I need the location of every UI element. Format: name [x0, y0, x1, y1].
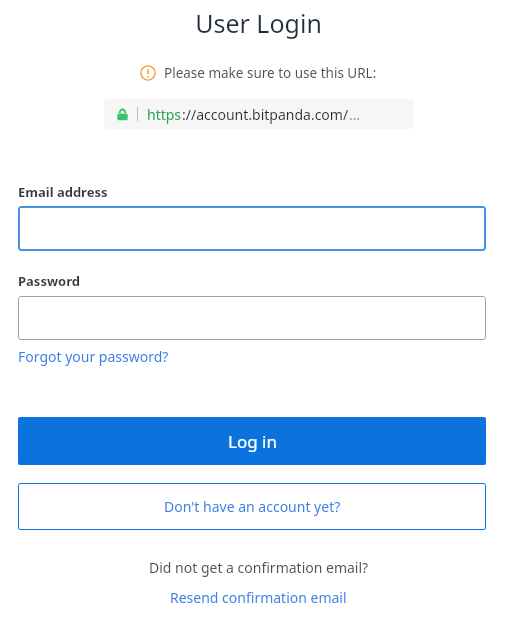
staticText: ://account.bitpanda.com/	[182, 105, 349, 124]
staticText: Resend confirmation email	[170, 588, 347, 607]
staticText: Please make sure to use this URL:	[164, 64, 377, 82]
button[interactable]: Secure connection	[104, 99, 414, 129]
staticText: Log in	[228, 430, 277, 453]
staticText: https	[147, 105, 182, 124]
button[interactable]	[18, 296, 486, 340]
button[interactable]: Log in	[18, 417, 486, 465]
button[interactable]: Forgot your password?	[18, 347, 169, 366]
button[interactable]: Resend confirmation email	[170, 588, 347, 607]
other: Warning	[140, 65, 156, 81]
staticText: Don't have an account yet?	[164, 497, 341, 516]
staticText: Did not get a confirmation email?	[149, 558, 369, 577]
staticText: Password	[18, 272, 80, 290]
staticText: Email address	[18, 183, 108, 201]
button[interactable]: Don't have an account yet?	[18, 483, 486, 530]
staticText: …	[349, 105, 361, 124]
staticText: Forgot your password?	[18, 347, 169, 366]
staticText: User Login	[195, 6, 322, 40]
button[interactable]	[18, 206, 486, 251]
other: Secure connection	[116, 108, 129, 121]
